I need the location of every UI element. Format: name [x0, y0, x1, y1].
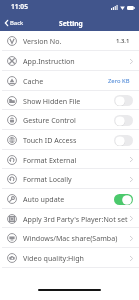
staticText: Back	[10, 19, 24, 27]
staticText: App.Instruction	[23, 56, 75, 66]
staticText: Format External	[23, 155, 77, 165]
staticText: Apply 3rd Party's Player:Not set	[23, 214, 128, 224]
button[interactable]: Back	[0, 15, 29, 31]
button[interactable]: Off	[114, 95, 133, 106]
button[interactable]: Off	[114, 135, 133, 146]
button[interactable]: Off	[114, 115, 133, 126]
button[interactable]: Auto update	[0, 189, 139, 209]
button[interactable]: Format External	[0, 150, 139, 169]
button[interactable]: Windows/Mac share(Samba)	[0, 228, 139, 248]
button[interactable]: App.Instruction	[0, 51, 139, 71]
staticText: Format Locally	[23, 174, 72, 184]
button[interactable]: Video quality:High	[0, 248, 139, 268]
button[interactable]: Apply 3rd Party's Player:Not set	[0, 209, 139, 228]
button[interactable]: Touch ID Access	[0, 130, 139, 150]
staticText: Zero KB	[108, 77, 130, 85]
staticText: Version No.	[23, 36, 62, 46]
button[interactable]: On	[114, 194, 133, 205]
button[interactable]: Cache	[0, 71, 139, 91]
staticText: Auto update	[23, 194, 65, 204]
button[interactable]: Gesture Control	[0, 110, 139, 130]
staticText: Setting	[59, 19, 83, 28]
staticText: 11:05	[11, 2, 28, 11]
staticText: 1.3.1	[116, 37, 130, 45]
staticText: Show Hidden File	[23, 96, 81, 106]
button[interactable]: Version No.	[0, 31, 139, 51]
button[interactable]: Show Hidden File	[0, 91, 139, 110]
staticText: Cache	[23, 76, 44, 86]
staticText: Touch ID Access	[23, 135, 77, 145]
staticText: Gesture Control	[23, 115, 76, 125]
button[interactable]: Format Locally	[0, 169, 139, 189]
staticText: Windows/Mac share(Samba)	[23, 233, 118, 243]
staticText: Video quality:High	[23, 253, 84, 263]
